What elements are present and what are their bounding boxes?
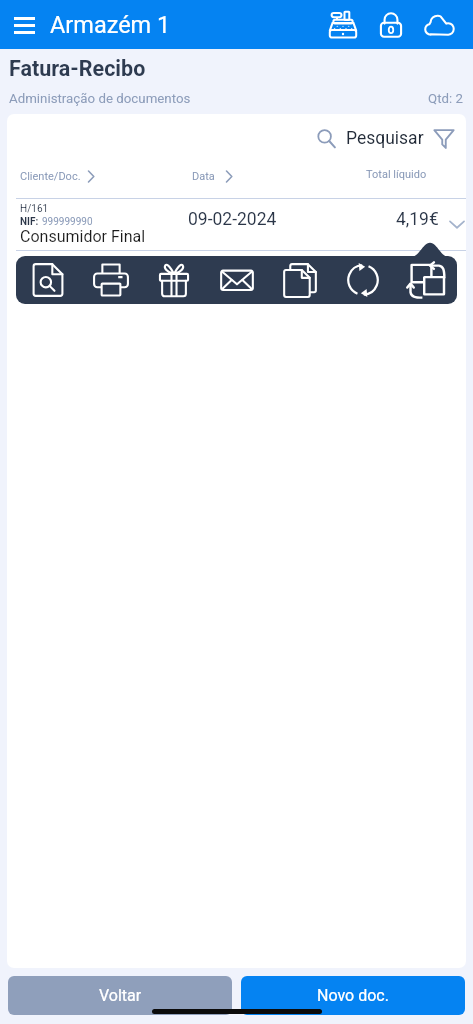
- staticText: 4,19€: [396, 209, 439, 230]
- button[interactable]: Data: [192, 168, 234, 185]
- staticText: Consumidor Final: [20, 227, 146, 246]
- button[interactable]: Voltar: [8, 976, 232, 1015]
- staticText: NIF:: [20, 216, 39, 228]
- button[interactable]: Caixa: [319, 0, 367, 49]
- button[interactable]: Nuvem: [415, 0, 463, 49]
- staticText: Qtd: 2: [428, 91, 463, 107]
- button[interactable]: Enviar email: [205, 256, 268, 304]
- button[interactable]: Duplicar: [268, 256, 331, 304]
- button[interactable]: Novo doc.: [241, 976, 465, 1015]
- button[interactable]: Expandir: [443, 213, 466, 235]
- button[interactable]: Cliente/Doc.: [20, 168, 96, 185]
- button[interactable]: Converter: [394, 256, 457, 304]
- button[interactable]: Imprimir: [79, 256, 142, 304]
- button[interactable]: Atualizar: [331, 256, 394, 304]
- staticText: Fatura-Recibo: [9, 56, 146, 81]
- button[interactable]: Pesquisar: [316, 128, 424, 149]
- staticText: Cliente/Doc.: [20, 170, 81, 183]
- staticText: Total líquido: [366, 168, 427, 181]
- staticText: Pesquisar: [346, 128, 424, 149]
- button[interactable]: Filtrar: [430, 124, 458, 152]
- button[interactable]: H/161: [7, 199, 466, 250]
- button[interactable]: Ver documento: [16, 256, 79, 304]
- staticText: H/161: [20, 203, 49, 215]
- staticText: Novo doc.: [317, 986, 389, 1005]
- staticText: Administração de documentos: [9, 91, 191, 107]
- button[interactable]: Menu: [4, 5, 44, 45]
- staticText: 999999990: [42, 216, 93, 228]
- staticText: 09-02-2024: [188, 209, 277, 230]
- staticText: Armazém 1: [50, 11, 171, 39]
- button[interactable]: Bloqueio: [367, 0, 415, 49]
- button[interactable]: Oferta: [142, 256, 205, 304]
- staticText: Voltar: [99, 986, 142, 1005]
- staticText: Data: [192, 170, 215, 183]
